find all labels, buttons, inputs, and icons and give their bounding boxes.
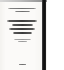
button[interactable] (0, 0, 47, 70)
